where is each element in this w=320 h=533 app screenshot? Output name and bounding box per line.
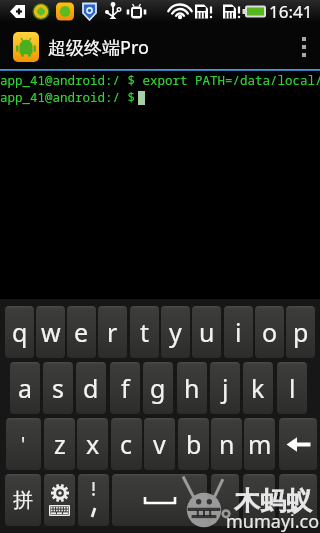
staticText: j bbox=[222, 371, 229, 405]
button[interactable]: Keyboard settings bbox=[44, 474, 75, 526]
staticText: z bbox=[54, 427, 66, 461]
button[interactable]: s bbox=[43, 362, 73, 414]
button[interactable]: v bbox=[144, 418, 175, 470]
staticText: f bbox=[121, 371, 130, 405]
staticText: c bbox=[120, 427, 133, 461]
staticText: m bbox=[248, 427, 272, 461]
button[interactable]: Backspace bbox=[279, 418, 317, 470]
button[interactable]: t bbox=[130, 306, 159, 358]
staticText: d bbox=[83, 371, 99, 405]
staticText: app_41@android:/ $ export PATH=/data/loc… bbox=[0, 72, 320, 89]
staticText: n bbox=[219, 427, 235, 461]
staticText: g bbox=[150, 371, 166, 405]
staticText: t bbox=[140, 315, 150, 349]
staticText: q bbox=[12, 315, 28, 349]
staticText: app_41@android:/ $ bbox=[0, 89, 143, 106]
button[interactable]: ' bbox=[6, 418, 41, 470]
button[interactable]: Space bbox=[112, 474, 207, 526]
button[interactable]: Enter bbox=[279, 474, 317, 526]
button[interactable]: o bbox=[255, 306, 284, 358]
button[interactable]: Emoji bbox=[211, 474, 239, 526]
button[interactable]: m bbox=[244, 418, 275, 470]
staticText: u bbox=[199, 315, 215, 349]
staticText: r bbox=[107, 315, 118, 349]
button[interactable]: a bbox=[10, 362, 40, 414]
staticText: p bbox=[293, 315, 309, 349]
staticText: v bbox=[153, 427, 166, 461]
staticText: 16:41 bbox=[269, 0, 313, 23]
button[interactable]: u bbox=[192, 306, 221, 358]
button[interactable]: n bbox=[211, 418, 242, 470]
button[interactable]: h bbox=[177, 362, 207, 414]
button[interactable]: j bbox=[210, 362, 240, 414]
button[interactable]: b bbox=[178, 418, 209, 470]
staticText: e bbox=[74, 315, 89, 349]
button[interactable]: i bbox=[224, 306, 253, 358]
staticText: h bbox=[184, 371, 200, 405]
staticText: b bbox=[186, 427, 202, 461]
staticText: 木蚂蚁 bbox=[234, 485, 312, 518]
staticText: s bbox=[52, 371, 64, 405]
button[interactable]: 拼 bbox=[5, 474, 41, 526]
staticText: l bbox=[289, 371, 296, 405]
staticText: y bbox=[169, 315, 182, 349]
button[interactable]: k bbox=[243, 362, 273, 414]
button[interactable]: e bbox=[67, 306, 96, 358]
button[interactable]: z bbox=[44, 418, 75, 470]
button[interactable]: g bbox=[143, 362, 173, 414]
staticText: mumayi.com bbox=[226, 509, 320, 533]
button[interactable]: w bbox=[36, 306, 65, 358]
button[interactable]: x bbox=[77, 418, 108, 470]
button[interactable]: Symbols bbox=[243, 474, 275, 526]
button[interactable]: Punctuation bbox=[78, 474, 109, 526]
staticText: x bbox=[86, 427, 100, 461]
button[interactable]: d bbox=[76, 362, 106, 414]
staticText: 拼 bbox=[13, 488, 33, 513]
button[interactable]: q bbox=[5, 306, 34, 358]
button[interactable]: More options bbox=[288, 23, 320, 71]
staticText: ' bbox=[21, 431, 26, 457]
staticText: k bbox=[251, 371, 265, 405]
button[interactable]: r bbox=[98, 306, 127, 358]
button[interactable]: y bbox=[161, 306, 190, 358]
staticText: i bbox=[235, 315, 242, 349]
button[interactable]: p bbox=[286, 306, 315, 358]
staticText: w bbox=[41, 315, 61, 349]
button[interactable]: l bbox=[277, 362, 307, 414]
staticText: o bbox=[262, 315, 278, 349]
staticText: 超级终端Pro bbox=[48, 35, 149, 60]
staticText: a bbox=[18, 371, 33, 405]
button[interactable]: c bbox=[111, 418, 142, 470]
button[interactable]: f bbox=[110, 362, 140, 414]
